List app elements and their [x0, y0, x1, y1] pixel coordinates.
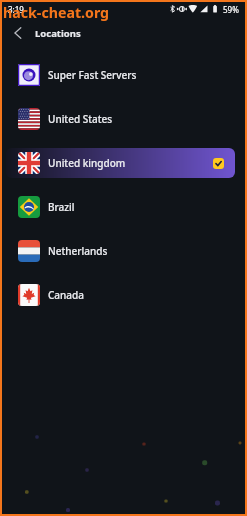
staticText: Super Fast Servers [48, 68, 137, 82]
button[interactable]: United States [6, 104, 235, 134]
staticText: United States [48, 112, 113, 126]
staticText: Brazil [48, 200, 75, 214]
button[interactable]: Super Fast Servers [6, 60, 235, 90]
button[interactable]: Canada [6, 280, 235, 310]
staticText: hack-cheat.org [3, 3, 110, 22]
staticText: United kingdom [48, 156, 126, 170]
staticText: Netherlands [48, 244, 108, 258]
button[interactable]: Netherlands [6, 236, 235, 266]
staticText: Locations [35, 27, 81, 40]
button[interactable]: Brazil [6, 192, 235, 222]
staticText: 3:19 [8, 4, 24, 15]
staticText: Canada [48, 288, 84, 302]
button[interactable]: Back [8, 23, 28, 43]
button[interactable]: United kingdom [6, 148, 235, 178]
staticText: 59% [223, 4, 239, 15]
